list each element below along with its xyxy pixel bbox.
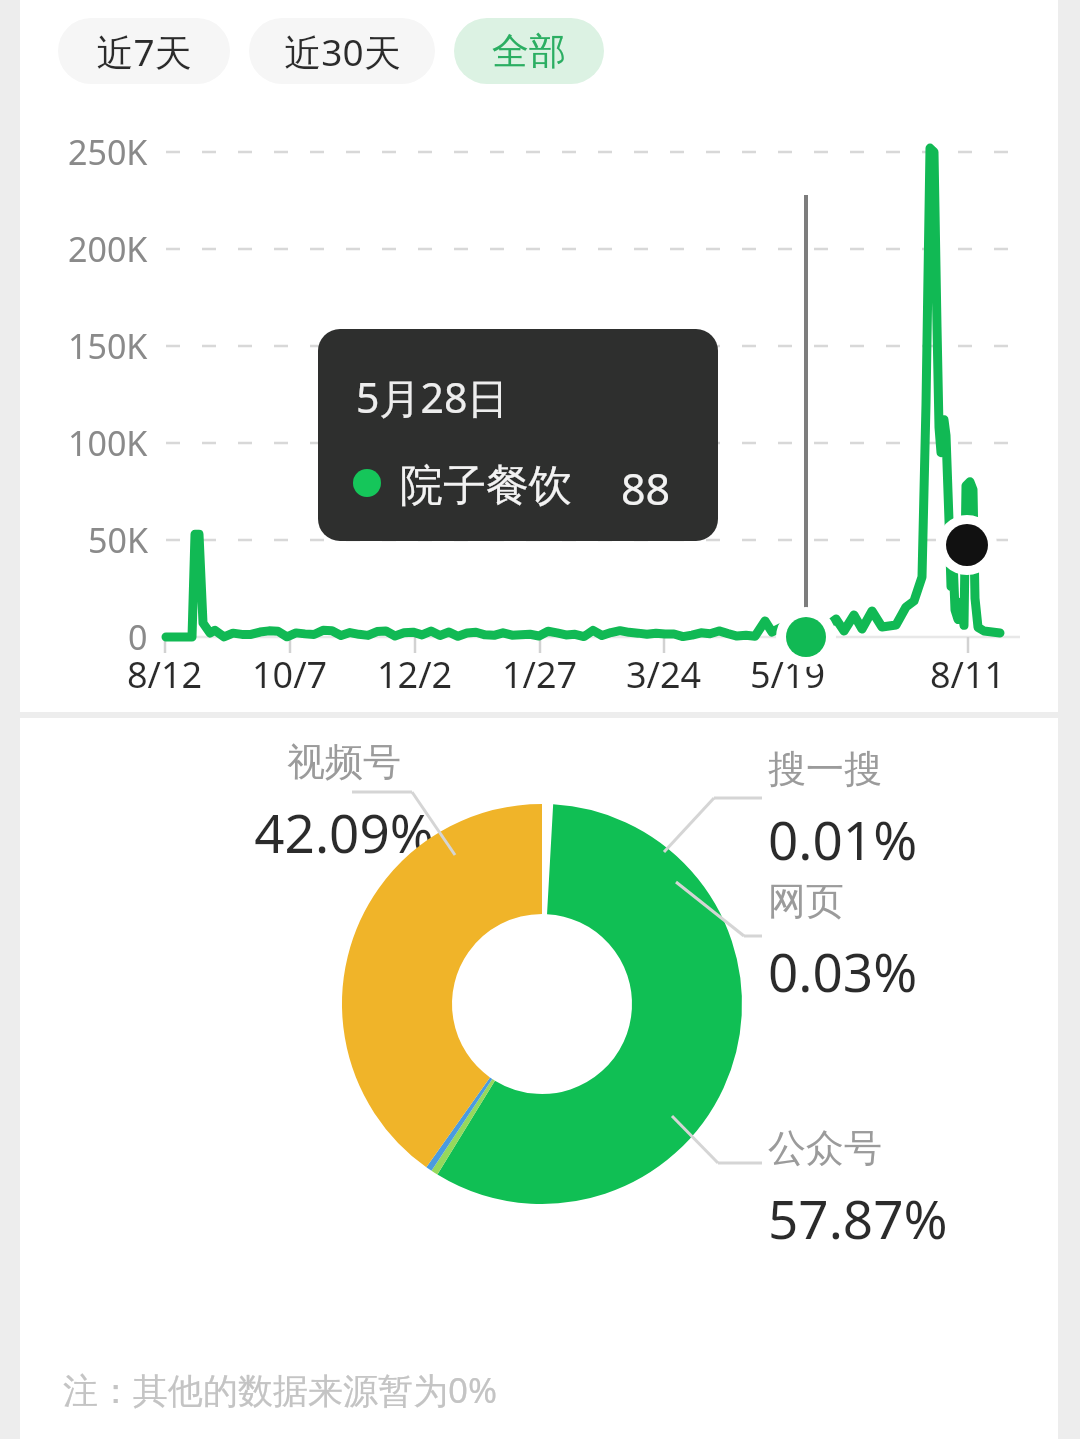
staticText: 网页 [768,877,844,925]
staticText: 3/24 [626,650,702,699]
staticText: 0 [128,614,148,660]
staticText: 150K [68,323,148,369]
button[interactable]: 全部 [454,18,604,84]
staticText: 近30天 [284,26,401,77]
staticText: 1/27 [502,650,578,699]
staticText: 8/11 [930,650,1006,699]
staticText: 搜一搜 [768,745,882,793]
staticText: 10/7 [252,650,328,699]
staticText: 88 [621,459,671,518]
staticText: 0.03% [768,935,918,1007]
staticText: 42.09% [168,796,520,868]
staticText: 250K [68,129,148,175]
staticText: 0.01% [768,803,918,875]
button[interactable]: 5月28日 [318,329,718,541]
staticText: 注：其他的数据来源暂为0% [63,1366,498,1414]
staticText: 100K [68,420,148,466]
staticText: 全部 [492,28,566,75]
button[interactable]: 近30天 [249,18,435,84]
staticText: 8/12 [127,650,203,699]
staticText: 院子餐饮 [400,459,572,513]
staticText: 12/2 [377,650,453,699]
staticText: 视频号 [168,738,520,786]
button[interactable]: 近7天 [58,18,230,84]
staticText: 公众号 [768,1124,882,1172]
staticText: 57.87% [768,1182,948,1254]
staticText: 5月28日 [356,369,509,425]
staticText: 200K [68,226,148,272]
staticText: 近7天 [96,26,192,77]
staticText: 50K [88,517,148,563]
staticText: 5/19 [750,650,826,699]
